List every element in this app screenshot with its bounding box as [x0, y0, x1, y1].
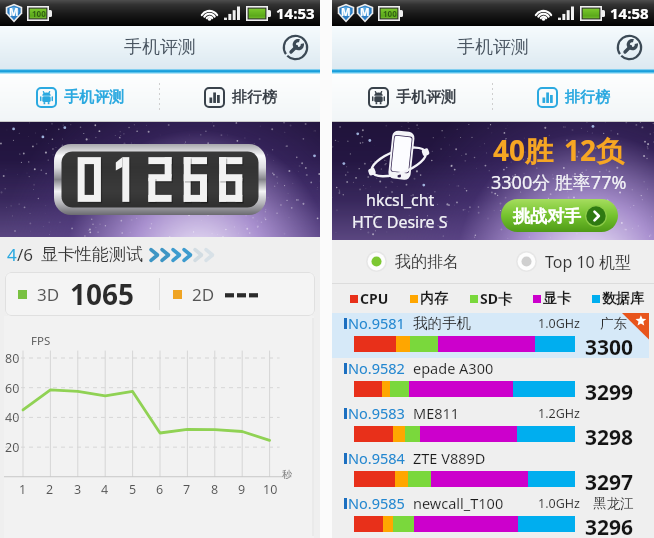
staticText: 显卡性能测试 [41, 244, 143, 265]
staticText: 3298 [585, 423, 634, 452]
staticText: 100 [32, 8, 46, 19]
staticText: 3300分 胜率77% [491, 170, 627, 195]
staticText: 4 [7, 243, 17, 266]
button[interactable]: No.9583 [332, 403, 649, 448]
staticText: 我的手机 [413, 314, 471, 332]
staticText: No.9582 [348, 358, 405, 378]
staticText: 显卡 [543, 290, 571, 308]
staticText: HTC Desire S [352, 211, 448, 233]
staticText: 数据库 [602, 290, 644, 308]
staticText: 14:53 [276, 3, 315, 23]
staticText: 黑龙江 [593, 495, 634, 512]
staticText: 3296 [585, 513, 634, 538]
staticText: hkcsl_cht [366, 189, 435, 211]
staticText: 3D [37, 283, 60, 306]
staticText: FPS [31, 333, 51, 349]
staticText: CPU [360, 289, 389, 308]
staticText: 我的排名 [395, 252, 459, 272]
staticText: M [360, 5, 370, 19]
staticText: M [341, 5, 351, 19]
staticText: 1.2GHz [538, 405, 580, 422]
staticText: newcall_T100 [413, 493, 504, 513]
staticText: 40 [5, 409, 20, 426]
staticText: 手机评测 [457, 36, 529, 59]
staticText: 手机评测 [124, 36, 196, 59]
staticText: 9 [238, 481, 246, 498]
staticText: 广东 [600, 315, 627, 332]
staticText: 60 [5, 380, 20, 397]
staticText: /6 [17, 243, 34, 266]
staticText: 2D [192, 283, 215, 306]
staticText: M [9, 5, 19, 19]
button[interactable]: 手机评测 [0, 74, 159, 121]
staticText: 3299 [585, 378, 634, 407]
staticText: 7 [183, 481, 191, 498]
staticText: 1.0GHz [538, 495, 580, 512]
staticText: 1 [19, 481, 27, 498]
staticText: 秒 [282, 468, 292, 481]
staticText: 1.0GHz [538, 315, 580, 332]
button[interactable]: 我的排名 [332, 240, 493, 283]
staticText: 40胜 [493, 131, 554, 169]
staticText: epade A300 [413, 358, 494, 378]
staticText: Top 10 机型 [545, 251, 631, 273]
staticText: 挑战对手 [513, 206, 581, 227]
staticText: 排行榜 [232, 88, 277, 107]
staticText: 10 [263, 481, 278, 498]
button[interactable]: No.9581 [332, 313, 649, 358]
staticText: 80 [5, 350, 20, 367]
staticText: 5 [129, 481, 137, 498]
button[interactable]: 手机评测 [332, 74, 492, 121]
staticText: ZTE V889D [413, 448, 486, 468]
staticText: 内存 [420, 290, 448, 308]
staticText: 手机评测 [396, 88, 456, 107]
button[interactable]: No.9582 [332, 358, 649, 403]
button[interactable]: No.9585 [332, 493, 649, 538]
staticText: 3300 [585, 333, 634, 362]
button[interactable]: Settings [615, 33, 644, 62]
staticText: 100 [383, 8, 397, 19]
staticText: No.9585 [348, 493, 405, 513]
staticText: 1065 [70, 275, 135, 313]
button[interactable]: No.9584 [332, 448, 649, 493]
staticText: 12负 [564, 131, 625, 169]
button[interactable]: 挑战对手 [501, 199, 618, 232]
button[interactable]: Settings [281, 33, 310, 62]
staticText: SD卡 [480, 289, 512, 308]
button[interactable]: 排行榜 [493, 74, 654, 121]
staticText: 4 [101, 481, 109, 498]
button[interactable]: 排行榜 [160, 74, 320, 121]
staticText: No.9584 [348, 448, 405, 468]
staticText: 14:58 [610, 3, 649, 23]
staticText: 8 [211, 481, 219, 498]
staticText: 排行榜 [565, 88, 610, 107]
staticText: No.9583 [348, 403, 405, 423]
staticText: 3 [74, 481, 82, 498]
staticText: 3297 [585, 468, 634, 497]
button[interactable]: Top 10 机型 [493, 240, 654, 283]
staticText: 手机评测 [64, 88, 124, 107]
staticText: No.9581 [348, 313, 405, 333]
staticText: 2 [46, 481, 54, 498]
staticText: 20 [5, 439, 20, 456]
staticText: 6 [156, 481, 164, 498]
staticText: ME811 [413, 403, 460, 423]
